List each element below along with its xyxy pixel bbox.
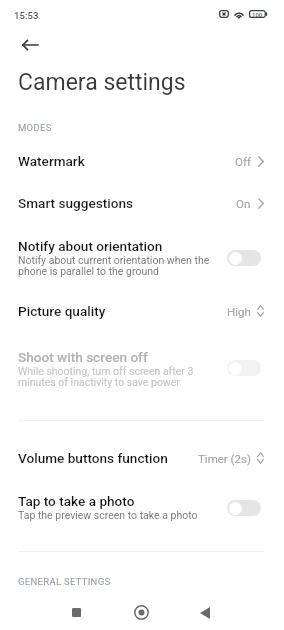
staticText: Tap to take a photo (18, 493, 135, 509)
button[interactable]: Recents (60, 597, 92, 628)
staticText: Tap the preview screen to take a photo (18, 509, 198, 521)
button[interactable]: Back (12, 27, 48, 63)
button[interactable]: Toggle (227, 500, 261, 516)
staticText: MODES (18, 122, 52, 133)
staticText: High (227, 305, 251, 318)
staticText: While shooting, turn off screen after 3 … (18, 365, 194, 389)
button[interactable]: Notify about orientation (0, 238, 284, 286)
staticText: Notify about orientation (18, 238, 163, 254)
button[interactable]: Home (125, 597, 157, 628)
button[interactable]: Watermark (0, 149, 284, 173)
staticText: On (236, 197, 251, 210)
staticText: Picture quality (18, 303, 106, 319)
button[interactable]: Toggle (227, 250, 261, 266)
staticText: GENERAL SETTINGS (18, 576, 111, 587)
staticText: Smart suggestions (18, 195, 133, 211)
button[interactable]: Shoot with screen off (0, 349, 284, 397)
button[interactable]: Toggle (227, 360, 261, 376)
staticText: 100 (252, 11, 263, 18)
button[interactable]: Back (189, 597, 221, 628)
button[interactable]: Volume buttons function (0, 446, 284, 470)
staticText: Notify about current orientation when th… (18, 254, 210, 278)
button[interactable]: Picture quality (0, 299, 284, 323)
button[interactable]: Tap to take a photo (0, 493, 284, 541)
button[interactable]: Smart suggestions (0, 191, 284, 215)
staticText: Off (235, 155, 251, 168)
staticText: Watermark (18, 153, 85, 169)
staticText: Timer (2s) (198, 452, 251, 465)
staticText: 15:53 (14, 10, 39, 21)
staticText: Shoot with screen off (18, 349, 148, 365)
staticText: Camera settings (18, 69, 186, 96)
staticText: Volume buttons function (18, 450, 168, 466)
